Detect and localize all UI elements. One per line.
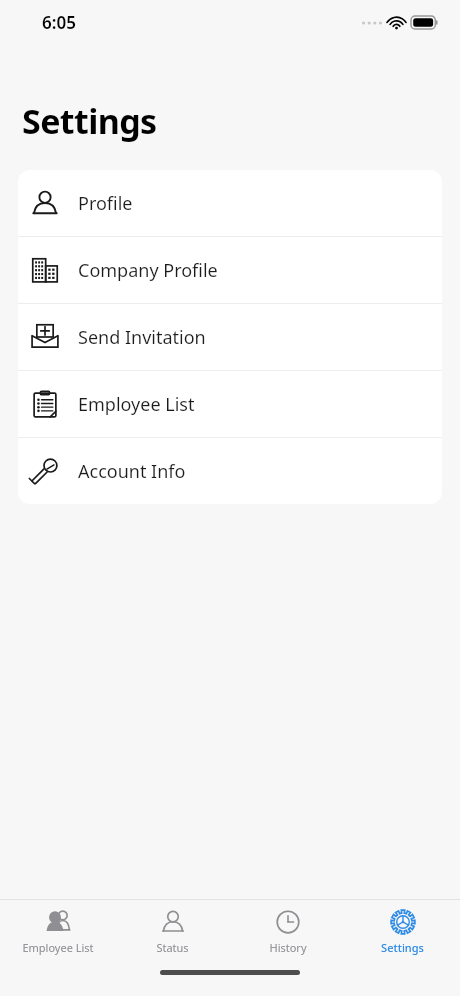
other: Status (158, 907, 188, 937)
staticText: Settings (381, 940, 424, 955)
other: History (273, 907, 303, 937)
staticText: Settings (22, 98, 157, 144)
other: Employee List (43, 907, 73, 937)
staticText: History (269, 940, 307, 955)
staticText: Send Invitation (78, 325, 206, 350)
staticText: Profile (78, 191, 133, 216)
button[interactable]: Employee List (18, 371, 442, 437)
button[interactable]: Status (115, 907, 230, 955)
staticText: Company Profile (78, 258, 218, 283)
button[interactable]: Profile (18, 170, 442, 236)
staticText: Status (156, 940, 189, 955)
button[interactable]: History (230, 907, 345, 955)
staticText: 6:05 (42, 11, 76, 34)
staticText: Employee List (78, 392, 195, 417)
staticText: Employee List (22, 940, 94, 955)
other: Settings (388, 907, 418, 937)
button[interactable]: Account Info (18, 438, 442, 504)
button[interactable]: Settings (345, 907, 460, 955)
button[interactable]: Company Profile (18, 237, 442, 303)
button[interactable]: Employee List (0, 907, 115, 955)
staticText: Account Info (78, 459, 186, 484)
button[interactable]: Send Invitation (18, 304, 442, 370)
